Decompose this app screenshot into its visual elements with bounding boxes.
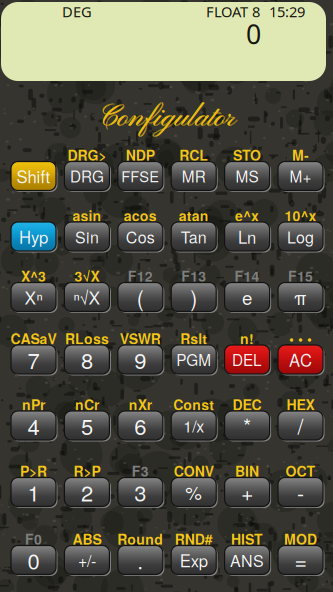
staticText: 8 [81, 344, 93, 375]
button[interactable]: Tan [171, 222, 218, 253]
staticText: 4 [27, 410, 39, 441]
staticText: Cos [126, 225, 155, 248]
staticText: BIN [235, 461, 259, 481]
staticText: ) [190, 282, 197, 312]
staticText: HEX [286, 394, 314, 414]
button[interactable]: ANS [225, 545, 272, 576]
staticText: Log [287, 225, 314, 248]
staticText: F13 [181, 266, 206, 286]
button[interactable]: 6 [118, 411, 165, 442]
button[interactable]: 8 [64, 345, 111, 376]
staticText: 1 [27, 476, 39, 508]
button[interactable]: MS [225, 161, 272, 192]
staticText: 0 [27, 544, 39, 576]
staticText: ⁿ√X [73, 285, 100, 309]
button[interactable]: +/- [64, 545, 111, 576]
button[interactable]: Shift [11, 161, 58, 192]
button[interactable]: / [278, 411, 325, 442]
button[interactable]: DEL [225, 345, 272, 376]
staticText: 7 [27, 344, 39, 375]
staticText: Sin [75, 225, 99, 248]
button[interactable]: Xⁿ [11, 282, 58, 313]
button[interactable]: 1/x [171, 411, 218, 442]
button[interactable]: * [225, 411, 272, 442]
staticText: * [243, 410, 251, 441]
staticText: π [294, 284, 307, 310]
button[interactable]: π [278, 282, 325, 313]
button[interactable]: Hyp [11, 222, 58, 253]
staticText: Const [173, 394, 214, 414]
staticText: • • • [289, 328, 312, 348]
staticText: F12 [128, 266, 153, 286]
button[interactable]: Sin [64, 222, 111, 253]
staticText: 5 [81, 410, 93, 441]
button[interactable]: FFSE [118, 161, 165, 192]
button[interactable]: % [171, 477, 218, 508]
button[interactable]: 5 [64, 411, 111, 442]
button[interactable]: 3 [118, 477, 165, 508]
button[interactable]: e [225, 282, 272, 313]
staticText: e [242, 284, 252, 310]
staticText: 9 [134, 344, 146, 375]
staticText: PGM [176, 348, 211, 370]
button[interactable]: 9 [118, 345, 165, 376]
staticText: X^3 [21, 266, 46, 286]
button[interactable]: ( [118, 282, 165, 313]
staticText: F0 [25, 529, 42, 549]
button[interactable]: Cos [118, 222, 165, 253]
button[interactable]: . [118, 545, 165, 576]
staticText: Exp [180, 548, 208, 572]
staticText: P>R [20, 461, 47, 481]
staticText: 0 [246, 16, 261, 52]
staticText: +/- [78, 548, 96, 571]
button[interactable]: 1 [11, 477, 58, 508]
staticText: HIST [231, 529, 263, 549]
staticText: Ln [238, 225, 256, 248]
button[interactable]: - [278, 477, 325, 508]
button[interactable]: 4 [11, 411, 58, 442]
button[interactable]: Log [278, 222, 325, 253]
button[interactable]: ⁿ√X [64, 282, 111, 313]
staticText: ( [137, 282, 144, 312]
staticText: DRG [70, 165, 104, 187]
staticText: F14 [235, 266, 260, 286]
staticText: 3√X [74, 266, 99, 286]
staticText: DRG> [67, 145, 106, 165]
button[interactable]: PGM [171, 345, 218, 376]
button[interactable]: Exp [171, 545, 218, 576]
staticText: F3 [132, 461, 149, 481]
staticText: NDP [126, 145, 155, 165]
button[interactable]: 0 [11, 545, 58, 576]
staticText: % [185, 479, 202, 505]
staticText: R>P [73, 461, 100, 481]
staticText: nCr [75, 394, 99, 414]
button[interactable]: 7 [11, 345, 58, 376]
button[interactable]: AC [278, 345, 325, 376]
staticText: ANS [230, 548, 264, 571]
button[interactable]: MR [171, 161, 218, 192]
staticText: MOD [284, 529, 317, 549]
staticText: VSWR [120, 328, 161, 348]
button[interactable]: 2 [64, 477, 111, 508]
button[interactable]: + [225, 477, 272, 508]
button[interactable]: = [278, 545, 325, 576]
staticText: 3 [134, 476, 146, 508]
staticText: RCL [179, 145, 208, 165]
staticText: M+ [289, 165, 311, 187]
staticText: FLOAT 8 [206, 1, 260, 21]
button[interactable]: ) [171, 282, 218, 313]
staticText: atan [179, 205, 209, 225]
button[interactable]: M+ [278, 161, 325, 192]
staticText: CASaV [10, 328, 56, 348]
staticText: ABS [72, 529, 101, 549]
staticText: + [241, 477, 253, 507]
staticText: Xⁿ [24, 285, 42, 309]
staticText: 2 [81, 476, 93, 508]
staticText: Configulator [98, 99, 235, 137]
staticText: FFSE [121, 165, 159, 186]
button[interactable]: Ln [225, 222, 272, 253]
staticText: CONV [174, 461, 214, 481]
staticText: Rslt [180, 328, 207, 348]
staticText: Tan [181, 225, 207, 248]
button[interactable]: DRG [64, 161, 111, 192]
